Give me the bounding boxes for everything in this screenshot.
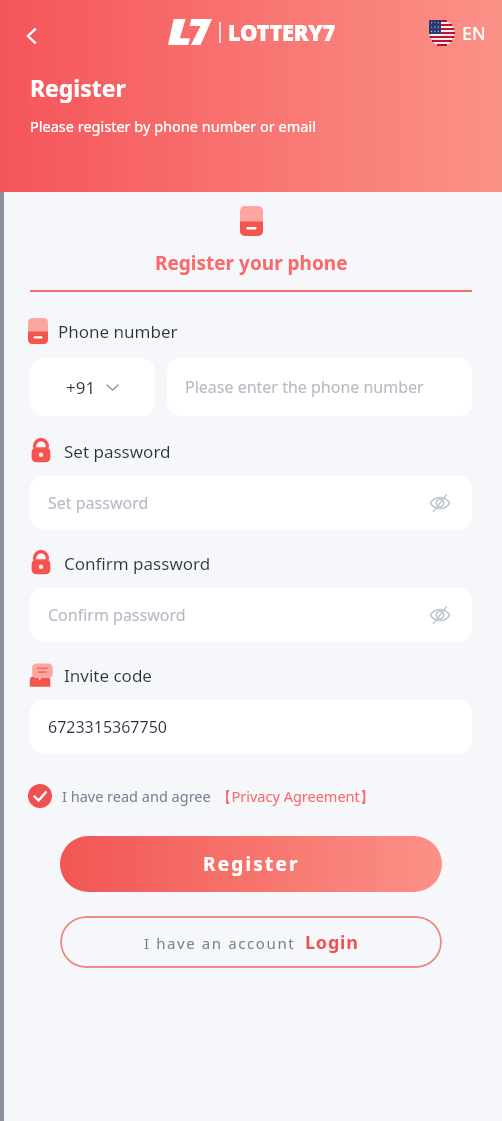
staticText: Confirm password (64, 552, 211, 575)
staticText: Register (30, 72, 126, 103)
staticText: Confirm password (48, 604, 186, 626)
button[interactable]: 6723315367750 (30, 700, 472, 754)
button[interactable]: Show password (426, 601, 454, 629)
button[interactable]: Register your phone (155, 206, 348, 276)
button[interactable]: EN (425, 16, 490, 50)
button[interactable]: Set password (30, 476, 472, 530)
staticText: 6723315367750 (48, 716, 167, 738)
staticText: Register your phone (155, 250, 348, 276)
button[interactable]: Back (10, 14, 54, 58)
button[interactable]: Agree to privacy agreement (28, 784, 52, 808)
button[interactable]: Agree to privacy agreement (28, 784, 375, 808)
button[interactable]: Register (60, 836, 442, 892)
staticText: Please register by phone number or email (30, 116, 316, 136)
staticText: EN (462, 21, 486, 46)
staticText: Login (305, 930, 359, 955)
button[interactable]: Please enter the phone number (167, 358, 472, 416)
staticText: Set password (64, 440, 171, 463)
staticText: Set password (48, 492, 149, 514)
button[interactable]: Confirm password (30, 588, 472, 642)
staticText: 【Privacy Agreement】 (217, 786, 375, 806)
staticText: Phone number (58, 320, 178, 343)
staticText: Register (203, 851, 300, 877)
button[interactable]: Show password (426, 489, 454, 517)
staticText: Please enter the phone number (185, 376, 424, 398)
staticText: I have read and agree (62, 786, 211, 806)
staticText: +91 (66, 376, 96, 399)
button[interactable]: I have an account (60, 916, 442, 968)
staticText: I have an account (144, 933, 296, 953)
staticText: LOTTERY7 (228, 17, 335, 47)
button[interactable]: +91 (30, 358, 155, 416)
staticText: Invite code (64, 664, 152, 687)
